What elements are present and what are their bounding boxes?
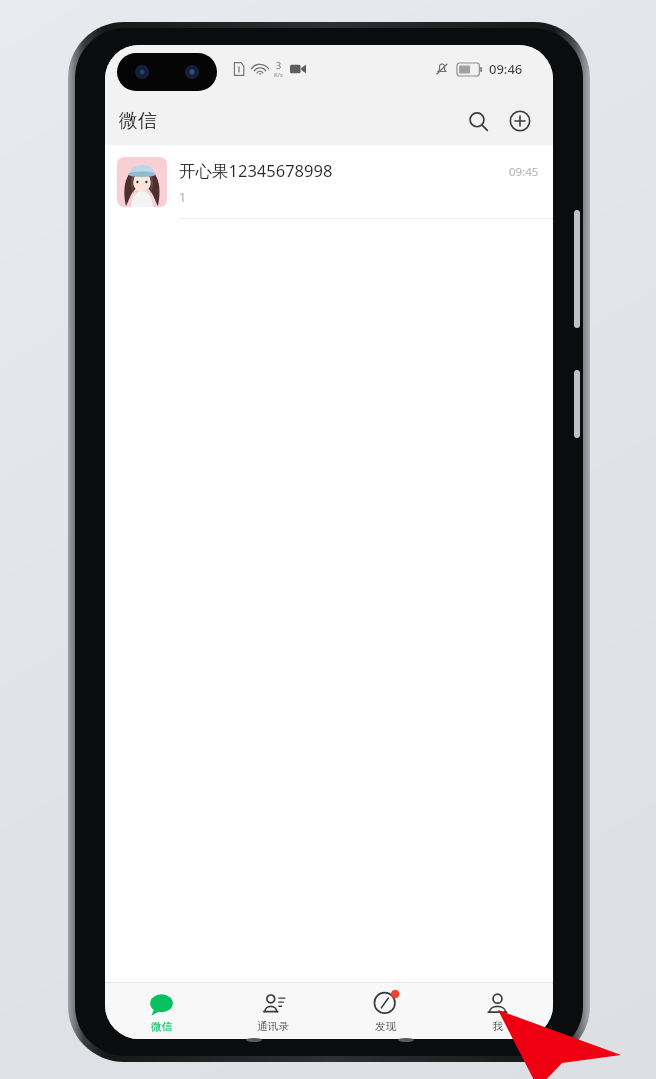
- staticText: 开心果12345678998: [179, 159, 333, 182]
- staticText: 3: [276, 59, 282, 71]
- staticText: 09:46: [489, 60, 523, 78]
- button[interactable]: 发现: [329, 983, 441, 1039]
- button[interactable]: 开心果12345678998: [105, 145, 553, 219]
- button[interactable]: Add: [501, 102, 539, 140]
- staticText: 微信: [151, 1020, 172, 1033]
- button[interactable]: 通讯录: [217, 983, 329, 1039]
- staticText: 通讯录: [257, 1020, 289, 1033]
- button[interactable]: Search: [459, 102, 497, 140]
- staticText: K/s: [274, 71, 283, 79]
- staticText: 我: [492, 1020, 503, 1033]
- button[interactable]: 微信: [105, 983, 217, 1039]
- staticText: 微信: [119, 109, 157, 133]
- staticText: 发现: [375, 1020, 396, 1033]
- staticText: 1: [179, 189, 187, 206]
- button[interactable]: 我: [441, 983, 553, 1039]
- staticText: 09:45: [509, 164, 539, 180]
